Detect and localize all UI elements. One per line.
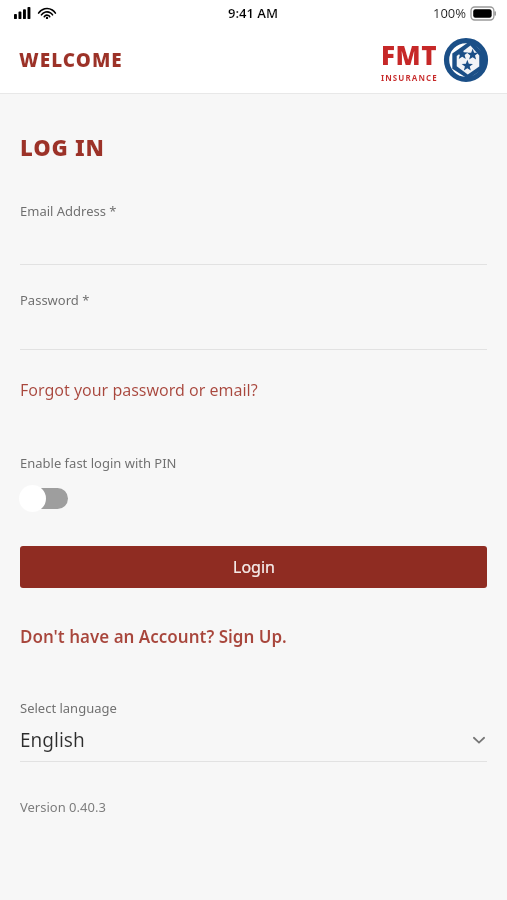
staticText: 100% [433, 4, 467, 22]
staticText: 9:41 AM [228, 4, 279, 22]
staticText: WELCOME [19, 47, 123, 73]
staticText: Password * [20, 291, 90, 309]
button[interactable]: Forgot your password or email? [20, 376, 258, 404]
staticText: Enable fast login with PIN [20, 454, 177, 472]
staticText: Select language [20, 699, 117, 717]
other: Open language list [471, 732, 487, 748]
staticText: INSURANCE [381, 72, 438, 83]
button[interactable]: Don't have an Account? Sign Up. [20, 622, 287, 651]
staticText: Version 0.40.3 [20, 798, 106, 816]
staticText: LOG IN [20, 132, 105, 162]
staticText: Email Address * [20, 202, 117, 220]
staticText: English [20, 727, 85, 753]
button[interactable]: English [20, 727, 487, 753]
staticText: Don't have an Account? Sign Up. [20, 625, 287, 648]
staticText: Login [233, 556, 275, 578]
staticText: FMT [381, 37, 438, 72]
button[interactable]: Enable fast login with PIN [20, 484, 72, 512]
button[interactable]: Login [20, 546, 487, 588]
staticText: Forgot your password or email? [20, 379, 258, 401]
